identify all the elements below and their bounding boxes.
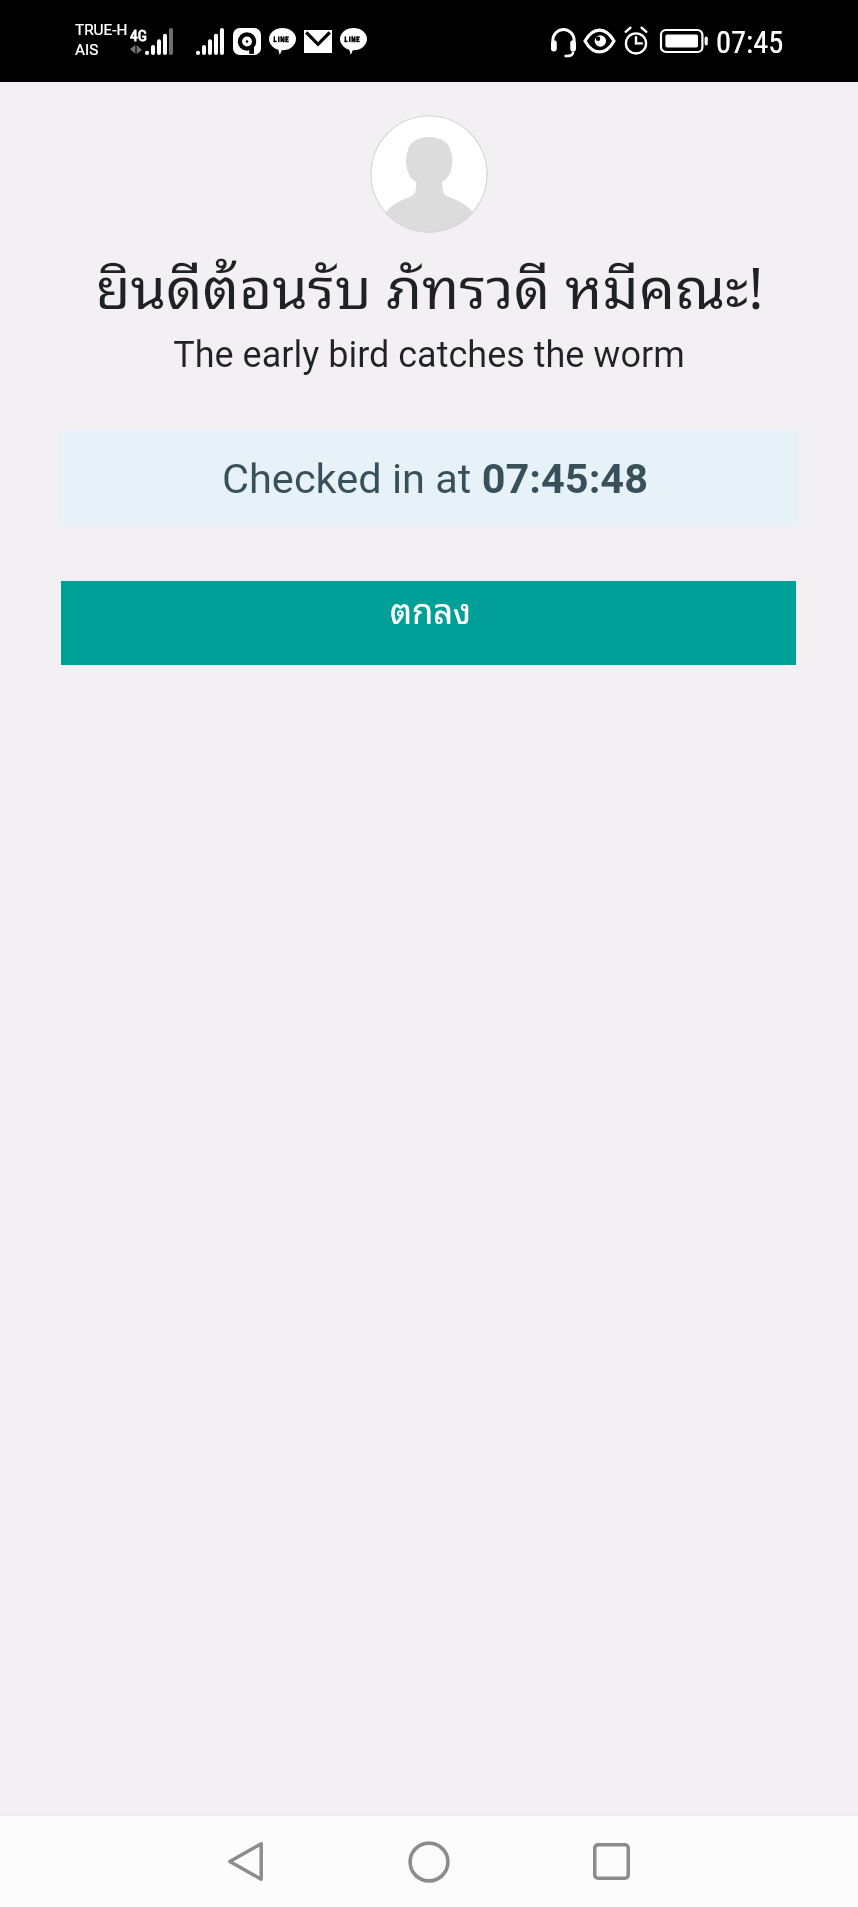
staticText: ตกลง — [390, 581, 472, 636]
staticText: 4G — [130, 27, 147, 45]
staticText: AIS — [75, 41, 99, 59]
button[interactable]: Back — [199, 1816, 291, 1907]
staticText: ยินดีต้อนรับ ภัทรวดี หมีคณะ! — [95, 238, 764, 329]
staticText: The early bird catches the worm — [173, 334, 685, 376]
button[interactable]: Home — [383, 1816, 475, 1907]
staticText: Checked in at 07:45:48 — [222, 454, 648, 503]
staticText: TRUE-H — [75, 21, 128, 39]
button[interactable]: Checked in at 07:45:48 — [59, 431, 799, 526]
button[interactable]: Recents — [565, 1816, 657, 1907]
button[interactable]: Profile photo — [370, 115, 488, 233]
staticText: 07:45 — [716, 25, 784, 61]
button[interactable]: ตกลง — [61, 581, 796, 665]
